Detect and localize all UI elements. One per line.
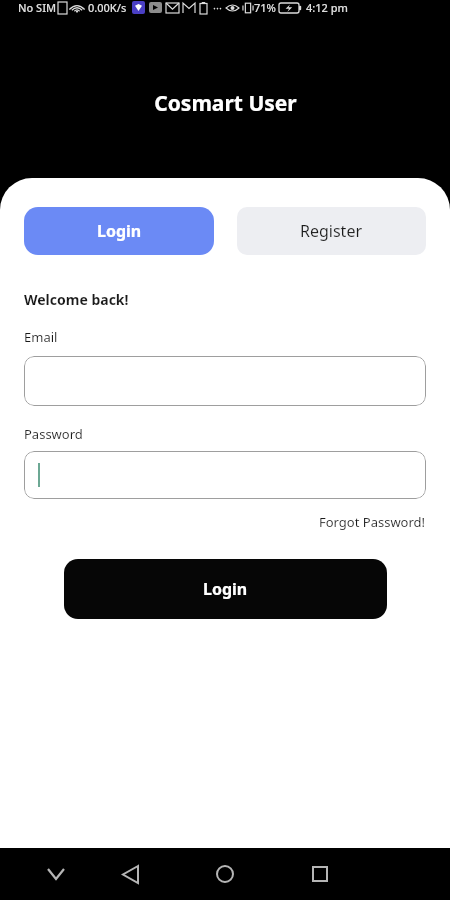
staticText: Register <box>300 220 363 242</box>
button[interactable]: Register <box>237 207 426 255</box>
staticText: Password <box>24 425 83 443</box>
button[interactable]: Login <box>64 559 387 619</box>
staticText: Login <box>97 220 142 242</box>
staticText: Login <box>203 578 248 600</box>
button[interactable]: Hide keyboard <box>34 852 78 896</box>
staticText: Email <box>24 328 58 346</box>
button[interactable]: Forgot Password! <box>319 513 426 531</box>
staticText: 4:12 pm <box>306 0 348 15</box>
staticText: Welcome back! <box>24 290 129 309</box>
button[interactable] <box>24 451 426 499</box>
staticText: 71% <box>254 0 276 15</box>
button[interactable]: Login <box>24 207 214 255</box>
staticText: No SIM <box>18 0 57 15</box>
button[interactable]: Recent apps <box>298 852 342 896</box>
button[interactable]: Home <box>203 852 247 896</box>
button[interactable]: Back <box>108 852 152 896</box>
staticText: 0.00K/s <box>88 0 127 15</box>
button[interactable] <box>24 356 426 406</box>
staticText: ··· <box>213 0 222 15</box>
staticText: Cosmart User <box>154 89 297 118</box>
